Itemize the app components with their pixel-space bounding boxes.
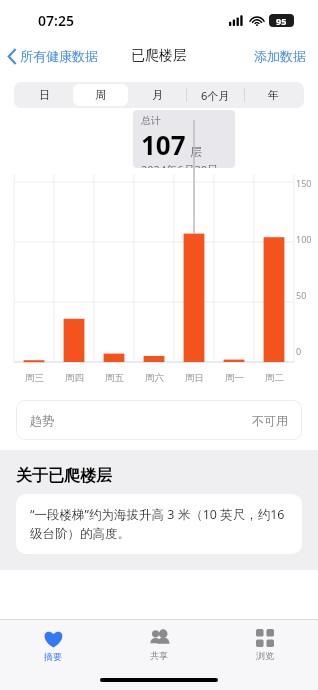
staticText: 150: [296, 177, 312, 189]
staticText: 周五: [105, 372, 124, 384]
staticText: 周一: [225, 372, 244, 384]
staticText: 浏览: [256, 650, 274, 661]
staticText: 总计: [141, 114, 161, 127]
button[interactable]: 共享: [106, 620, 212, 670]
staticText: 07:25: [38, 11, 74, 30]
staticText: 107: [141, 127, 186, 162]
staticText: 50: [296, 289, 307, 301]
staticText: 所有健康数据: [20, 48, 98, 64]
button[interactable]: 所有健康数据: [0, 44, 104, 68]
staticText: 不可用: [252, 413, 288, 428]
staticText: 周: [95, 88, 106, 102]
staticText: 95: [276, 15, 287, 27]
button[interactable]: 日: [17, 84, 71, 106]
staticText: 6个月: [201, 88, 230, 103]
staticText: 0: [296, 345, 302, 357]
staticText: 共享: [150, 650, 168, 661]
staticText: 趋势: [30, 413, 54, 428]
staticText: 月: [152, 88, 163, 102]
staticText: “一段楼梯”约为海拔升高 3 米（10 英尺，约16级台阶）的高度。: [30, 506, 288, 542]
staticText: 周日: [185, 372, 204, 384]
button[interactable]: 年: [246, 84, 301, 106]
button[interactable]: 添加数据: [242, 44, 318, 68]
button[interactable]: 周: [73, 84, 128, 106]
staticText: 日: [39, 88, 50, 102]
staticText: 周二: [265, 372, 284, 384]
staticText: 已爬楼层: [131, 47, 187, 65]
button[interactable]: 月: [130, 84, 185, 106]
button[interactable]: 摘要: [0, 620, 106, 670]
staticText: 周三: [25, 372, 44, 384]
staticText: 周四: [65, 372, 84, 384]
staticText: 年: [268, 88, 279, 102]
staticText: 关于已爬楼层: [16, 466, 112, 486]
button[interactable]: 浏览: [212, 620, 318, 670]
button[interactable]: 6个月: [188, 84, 243, 106]
staticText: 摘要: [44, 651, 62, 662]
staticText: 层: [190, 144, 202, 159]
staticText: 2024年6月30日: [141, 162, 219, 168]
staticText: 周六: [145, 372, 164, 384]
button[interactable]: 趋势: [16, 400, 302, 440]
button[interactable]: “一段楼梯”约为海拔升高 3 米（10 英尺，约16级台阶）的高度。: [16, 494, 302, 554]
staticText: 100: [296, 233, 312, 245]
